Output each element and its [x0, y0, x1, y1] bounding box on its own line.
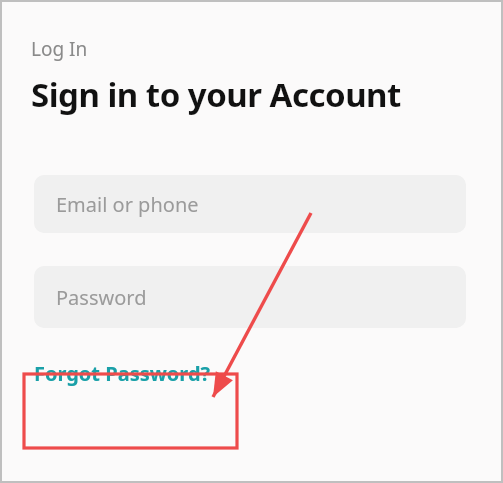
staticText: Log In [31, 36, 88, 62]
staticText: Password [56, 284, 147, 311]
staticText: Sign in to your Account [31, 72, 401, 117]
button[interactable]: Email or phone [34, 175, 466, 233]
button[interactable]: Forgot Password? [34, 354, 211, 392]
staticText: Email or phone [56, 191, 199, 218]
staticText: Forgot Password? [34, 360, 211, 387]
button[interactable]: Password [34, 266, 466, 328]
